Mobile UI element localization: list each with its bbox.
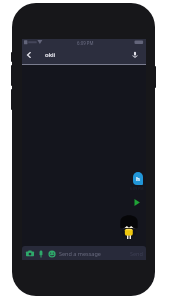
button[interactable]: Send xyxy=(130,250,143,257)
button[interactable]: Camera xyxy=(22,246,146,260)
button[interactable]: Back xyxy=(22,45,35,64)
button[interactable]: Voice message xyxy=(36,249,45,258)
button[interactable]: Voice search xyxy=(123,45,146,64)
staticText: 6:09 PM xyxy=(77,40,94,46)
staticText: okii xyxy=(45,51,56,59)
button[interactable]: Camera xyxy=(25,249,34,258)
staticText: Send a message xyxy=(59,250,101,257)
button[interactable]: h xyxy=(133,172,143,185)
staticText: Send xyxy=(130,250,143,257)
staticText: h xyxy=(136,175,140,183)
staticText: 6:09 PM xyxy=(130,186,144,191)
button[interactable]: Emoji xyxy=(47,249,56,258)
